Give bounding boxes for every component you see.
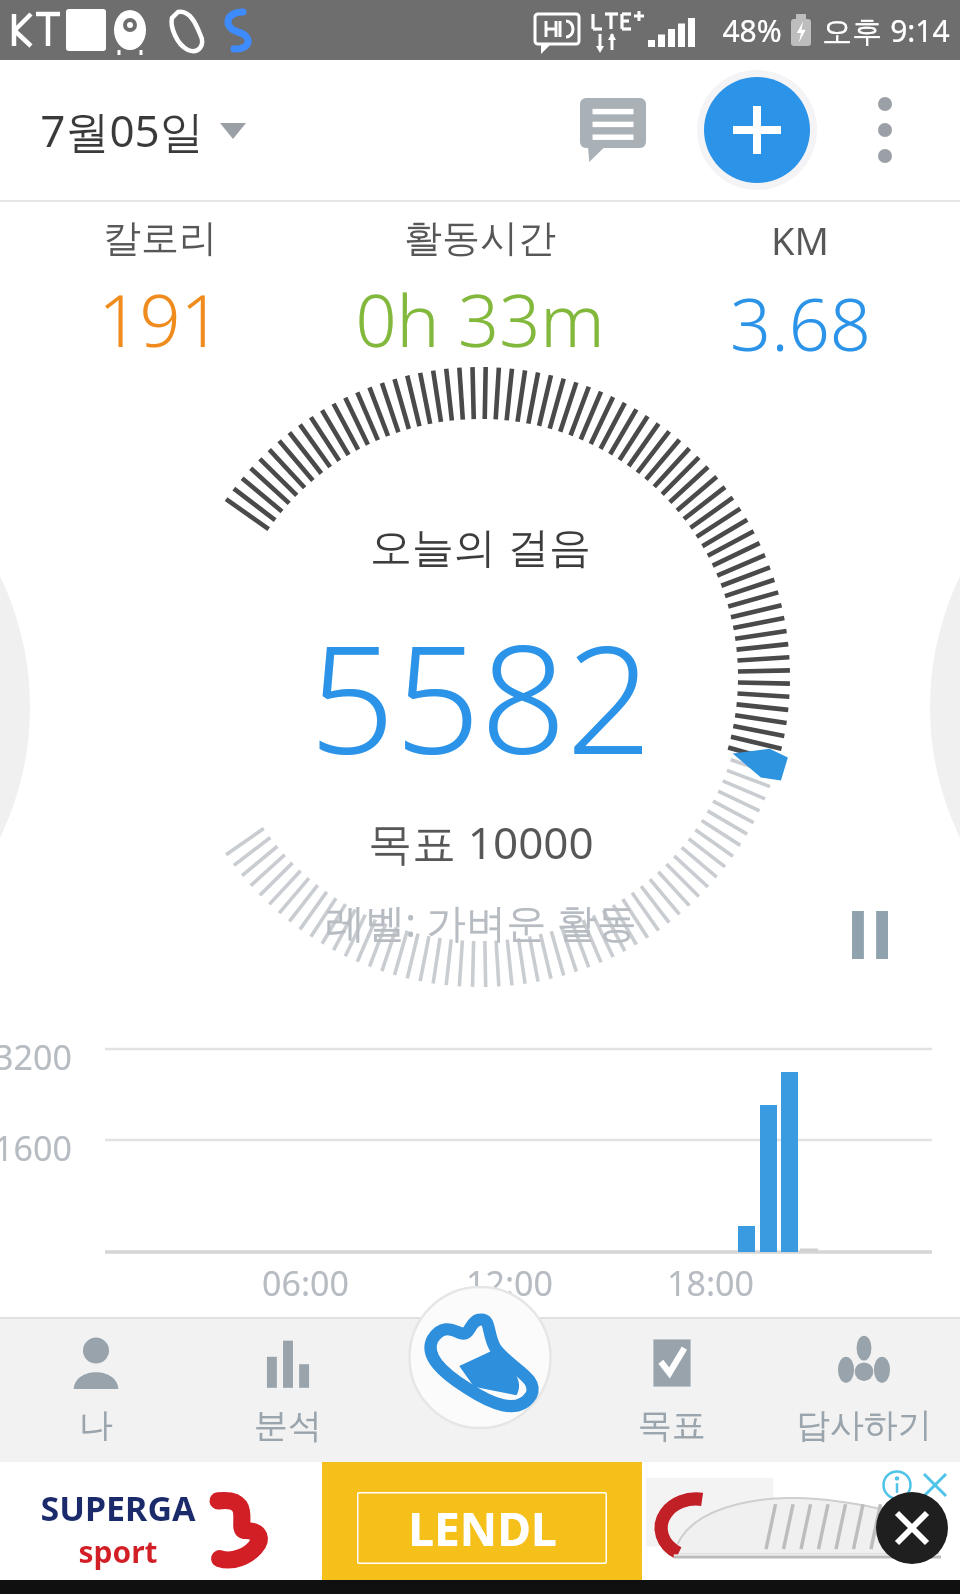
staticText: 목표 10000	[368, 812, 594, 872]
button[interactable]: 오늘의 걸음	[309, 517, 652, 949]
staticText: 활동시간	[404, 214, 556, 262]
staticText: 48%	[722, 10, 782, 51]
staticText: KM	[771, 214, 829, 266]
button[interactable]: 추가	[697, 70, 817, 190]
button[interactable]: SUPERGA	[0, 1462, 960, 1594]
staticText: 목표	[638, 1404, 706, 1447]
staticText: LENDL	[408, 1497, 557, 1560]
staticText: sport	[78, 1531, 158, 1572]
button[interactable]: 걷기	[397, 1285, 563, 1430]
staticText: SUPERGA	[40, 1485, 196, 1531]
staticText: 3200	[0, 1034, 72, 1080]
staticText: 분석	[254, 1404, 322, 1447]
staticText: 18:00	[667, 1260, 754, 1306]
button[interactable]: 답사하기	[768, 1317, 960, 1462]
button[interactable]: 분석	[192, 1317, 384, 1462]
button[interactable]: 칼로리	[0, 202, 320, 387]
staticText: 0h 33m	[355, 270, 605, 368]
staticText: 오늘의 걸음	[370, 517, 591, 574]
button[interactable]: 목표	[576, 1317, 768, 1462]
staticText: 12:00	[466, 1260, 553, 1306]
button[interactable]: 일시정지	[822, 887, 918, 983]
button[interactable]: 더보기	[843, 88, 927, 172]
button[interactable]: KM	[640, 202, 960, 387]
staticText: 191	[98, 270, 222, 368]
button[interactable]: 광고 정보	[878, 1466, 916, 1504]
button[interactable]: 활동시간	[320, 202, 640, 387]
button[interactable]: 닫기	[876, 1492, 948, 1564]
staticText: 06:00	[262, 1260, 349, 1306]
staticText: 나	[79, 1404, 113, 1447]
staticText: 5582	[309, 594, 652, 798]
staticText: 7월05일	[40, 100, 204, 160]
button[interactable]: 나	[0, 1317, 192, 1462]
staticText: 답사하기	[796, 1404, 932, 1447]
button[interactable]: 7월05일	[36, 90, 250, 170]
staticText: 1600	[0, 1125, 72, 1171]
button[interactable]: 메시지	[566, 83, 660, 177]
staticText: 칼로리	[103, 214, 217, 262]
staticText: 오후 9:14	[822, 10, 950, 51]
staticText: 3.68	[730, 274, 871, 372]
button[interactable]: 광고 닫기	[916, 1466, 954, 1504]
staticText: 레벨: 가벼운 활동	[325, 894, 637, 949]
